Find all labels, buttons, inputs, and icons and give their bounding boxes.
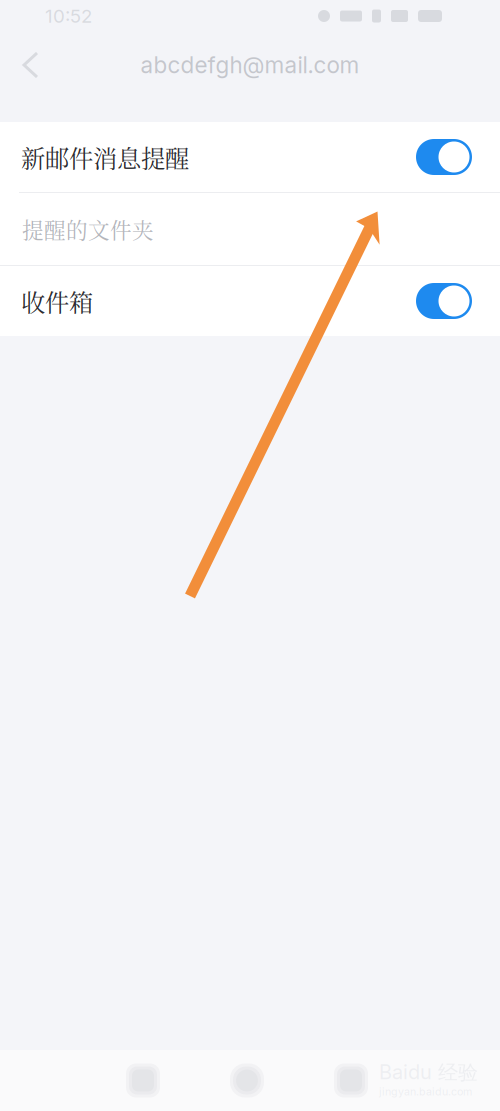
button[interactable]: 收件箱 xyxy=(0,266,500,336)
staticText: 提醒的文件夹 xyxy=(22,213,154,244)
staticText: jingyan.baidu.com xyxy=(379,1085,472,1098)
staticText: Baidu 经验 xyxy=(379,1060,478,1085)
button[interactable]: Recents xyxy=(328,1057,374,1103)
button[interactable]: Back xyxy=(120,1057,166,1103)
staticText: 收件箱 xyxy=(21,284,93,318)
button[interactable]: Back xyxy=(6,37,55,93)
button[interactable]: Home xyxy=(224,1057,270,1103)
button[interactable]: 新邮件消息提醒 xyxy=(0,122,500,192)
staticText: abcdefgh@mail.com xyxy=(140,51,359,79)
staticText: 新邮件消息提醒 xyxy=(21,140,189,174)
staticText: 10:52 xyxy=(45,5,92,27)
